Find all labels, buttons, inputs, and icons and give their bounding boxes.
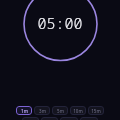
- staticText: 05:00: [37, 13, 83, 33]
- button[interactable]: 1m: [16, 106, 32, 115]
- button[interactable]: 30m: [41, 117, 58, 120]
- button[interactable]: 60m: [80, 117, 98, 120]
- button[interactable]: 5m: [52, 106, 68, 115]
- button[interactable]: 3m: [34, 106, 50, 115]
- button[interactable]: 20m: [22, 117, 39, 120]
- button[interactable]: 45m: [60, 117, 78, 120]
- staticText: 3m: [39, 108, 46, 114]
- button[interactable]: 10m: [70, 106, 86, 115]
- staticText: 10m: [73, 108, 83, 114]
- staticText: 15m: [91, 108, 101, 114]
- staticText: 1m: [21, 108, 28, 114]
- button[interactable]: Start or pause timer: [32, 4, 88, 60]
- staticText: 5m: [57, 108, 64, 114]
- button[interactable]: 15m: [88, 106, 104, 115]
